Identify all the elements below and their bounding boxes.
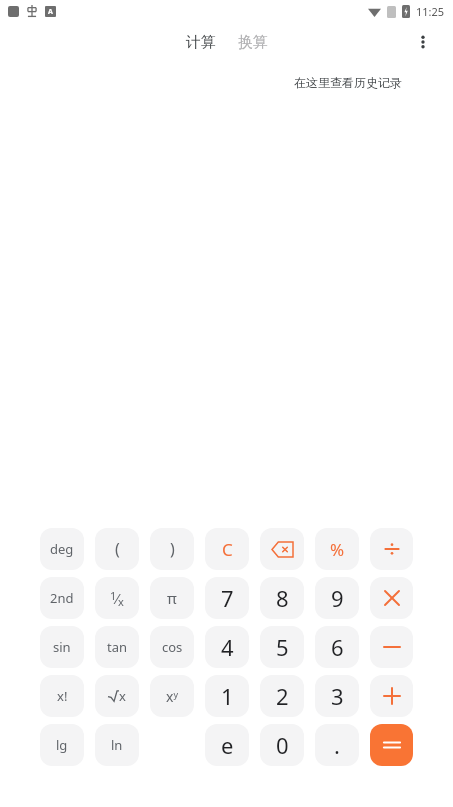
button[interactable]: ( [95, 528, 139, 570]
button[interactable] [95, 675, 139, 717]
button[interactable]: tan [95, 626, 139, 668]
button[interactable]: 8 [260, 577, 304, 619]
button[interactable]: cos [150, 626, 194, 668]
button[interactable]: 计算 [182, 29, 220, 56]
button[interactable]: 5 [260, 626, 304, 668]
staticText: 11:25 [416, 4, 445, 19]
staticText: A [48, 7, 53, 17]
button[interactable]: + [370, 675, 413, 717]
staticText: 8 [276, 583, 289, 613]
staticText: sin [53, 638, 71, 656]
staticText: 换算 [238, 33, 268, 52]
button[interactable]: ÷ [370, 528, 413, 570]
button[interactable]: . [315, 724, 359, 766]
button[interactable]: x! [40, 675, 84, 717]
button[interactable]: 7 [205, 577, 249, 619]
staticText: ) [170, 538, 175, 560]
button[interactable]: e [205, 724, 249, 766]
button[interactable] [95, 577, 139, 619]
staticText: tan [107, 638, 128, 656]
staticText: 1⁄x [110, 588, 124, 609]
button[interactable]: 2 [260, 675, 304, 717]
button[interactable]: 在这里查看历史记录 [282, 68, 414, 97]
button[interactable]: sin [40, 626, 84, 668]
button[interactable]: 9 [315, 577, 359, 619]
staticText: x [119, 687, 126, 705]
button[interactable]: ln [95, 724, 139, 766]
button[interactable]: π [150, 577, 194, 619]
button[interactable]: 2nd [40, 577, 84, 619]
staticText: C [222, 538, 233, 561]
button[interactable]: C [205, 528, 249, 570]
staticText: 6 [331, 632, 344, 662]
staticText: ln [111, 736, 123, 754]
button[interactable]: lg [40, 724, 84, 766]
staticText: x! [57, 687, 68, 705]
staticText: cos [162, 638, 183, 656]
staticText: 2 [276, 681, 289, 711]
button[interactable]: Backspace [260, 528, 304, 570]
staticText: lg [56, 736, 68, 754]
button[interactable]: × [370, 577, 413, 619]
staticText: 7 [221, 583, 234, 613]
staticText: 在这里查看历史记录 [294, 75, 402, 90]
button[interactable]: 4 [205, 626, 249, 668]
staticText: e [221, 730, 234, 760]
staticText: 4 [221, 632, 234, 662]
staticText: xy [166, 687, 178, 706]
button[interactable]: x [150, 675, 194, 717]
button[interactable]: 3 [315, 675, 359, 717]
button[interactable]: Equals [370, 724, 413, 766]
staticText: 1 [221, 681, 234, 711]
button[interactable]: 6 [315, 626, 359, 668]
button[interactable]: deg [40, 528, 84, 570]
button[interactable]: − [370, 626, 413, 668]
staticText: π [167, 588, 177, 608]
button[interactable]: 1 [205, 675, 249, 717]
button[interactable]: 换算 [234, 29, 272, 56]
button[interactable]: ) [150, 528, 194, 570]
button[interactable]: 0 [260, 724, 304, 766]
staticText: % [330, 538, 345, 561]
staticText: ( [115, 538, 120, 560]
staticText: . [334, 730, 340, 760]
staticText: 5 [276, 632, 289, 662]
staticText: 2nd [50, 589, 74, 607]
button[interactable]: More options [405, 24, 441, 60]
staticText: 3 [331, 681, 344, 711]
staticText: 9 [331, 583, 344, 613]
button[interactable]: % [315, 528, 359, 570]
staticText: 0 [276, 730, 289, 760]
staticText: deg [50, 540, 74, 558]
staticText: 计算 [186, 33, 216, 52]
